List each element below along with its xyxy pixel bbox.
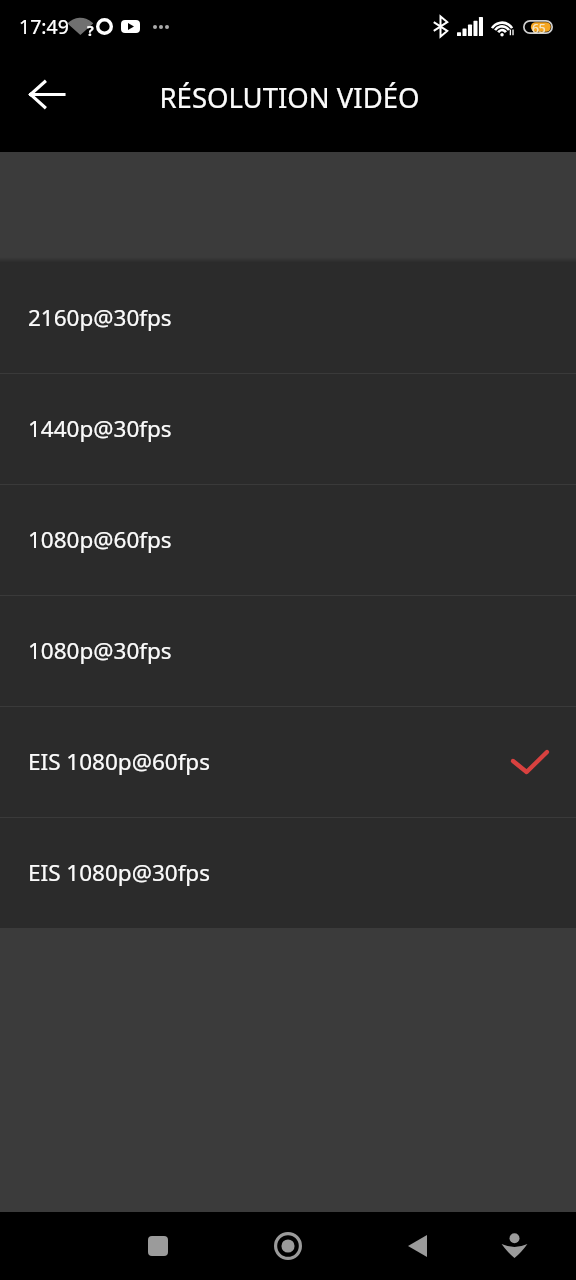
button[interactable]: EIS 1080p@30fps — [0, 818, 576, 928]
staticText: 2160p@30fps — [28, 302, 172, 333]
button[interactable]: 1440p@30fps — [0, 374, 576, 484]
button[interactable]: 2160p@30fps — [0, 263, 576, 373]
button[interactable]: Back — [14, 62, 78, 126]
staticText: 1080p@30fps — [28, 635, 172, 666]
button[interactable]: 1080p@30fps — [0, 596, 576, 706]
staticText: 1440p@30fps — [28, 413, 172, 444]
staticText: EIS 1080p@30fps — [28, 857, 210, 888]
button[interactable]: EIS 1080p@60fps — [0, 707, 576, 817]
button[interactable]: Home — [258, 1216, 318, 1276]
staticText: 65 — [532, 20, 546, 34]
staticText: EIS 1080p@60fps — [28, 746, 210, 777]
staticText: RÉSOLUTION VIDÉO — [159, 79, 420, 116]
button[interactable]: Hide keyboard — [484, 1216, 544, 1276]
staticText: 17:49 — [19, 13, 69, 40]
staticText: ? — [87, 21, 94, 37]
staticText: 1080p@60fps — [28, 524, 172, 555]
button[interactable]: Back — [387, 1216, 447, 1276]
button[interactable]: 1080p@60fps — [0, 485, 576, 595]
button[interactable]: Recent apps — [128, 1216, 188, 1276]
